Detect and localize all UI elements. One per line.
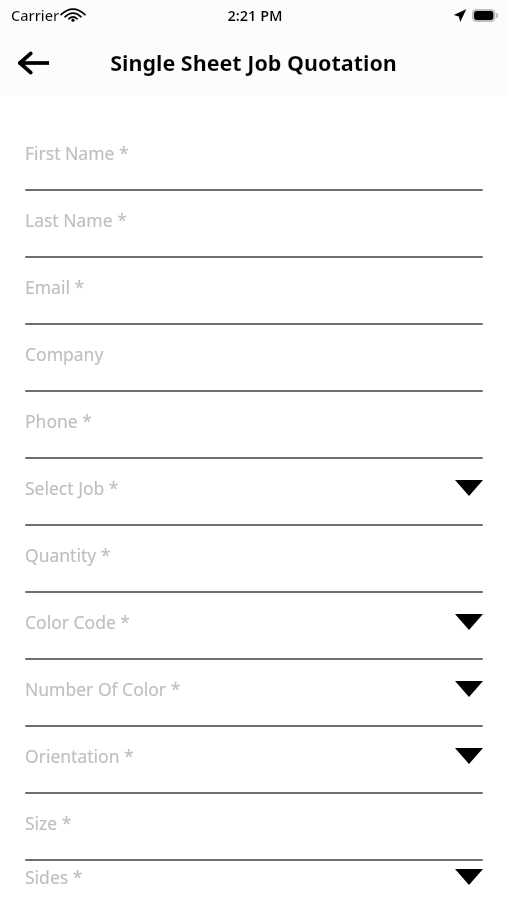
staticText: Quantity * — [25, 543, 111, 567]
staticText: Sides * — [25, 865, 83, 889]
staticText: Phone * — [25, 409, 92, 433]
button[interactable]: Last Name * — [25, 191, 483, 258]
staticText: Last Name * — [25, 208, 127, 232]
button[interactable]: Select Job * — [25, 459, 483, 526]
button[interactable]: Orientation * — [25, 727, 483, 794]
staticText: Number Of Color * — [25, 677, 181, 701]
staticText: Email * — [25, 275, 85, 299]
staticText: Orientation * — [25, 744, 134, 768]
button[interactable]: Back — [10, 39, 58, 87]
button[interactable]: Quantity * — [25, 526, 483, 593]
staticText: Company — [25, 342, 104, 366]
staticText: Carrier — [11, 5, 60, 25]
button[interactable]: Size * — [25, 794, 483, 861]
button[interactable]: Sides * — [25, 861, 483, 900]
button[interactable]: First Name * — [25, 124, 483, 191]
button[interactable]: Company — [25, 325, 483, 392]
button[interactable]: Color Code * — [25, 593, 483, 660]
staticText: Select Job * — [25, 476, 119, 500]
staticText: Size * — [25, 811, 72, 835]
staticText: Single Sheet Job Quotation — [110, 48, 397, 77]
staticText: First Name * — [25, 141, 129, 165]
staticText: 2:21 PM — [227, 5, 283, 25]
button[interactable]: Phone * — [25, 392, 483, 459]
staticText: Color Code * — [25, 610, 130, 634]
button[interactable]: Email * — [25, 258, 483, 325]
button[interactable]: Number Of Color * — [25, 660, 483, 727]
